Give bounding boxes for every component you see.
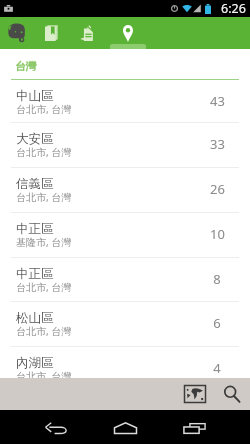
button[interactable]: 松山區 xyxy=(0,302,250,346)
staticText: 台北市, 台灣 xyxy=(16,102,72,116)
button[interactable]: Evernote home xyxy=(0,17,33,49)
staticText: 6 xyxy=(213,314,221,332)
staticText: 台灣 xyxy=(15,60,36,73)
staticText: 中正區 xyxy=(16,266,54,282)
button[interactable]: 大安區 xyxy=(0,123,250,167)
staticText: 松山區 xyxy=(16,310,54,326)
staticText: 基隆市, 台灣 xyxy=(16,235,72,249)
staticText: 大安區 xyxy=(16,131,54,147)
button[interactable]: 中正區 xyxy=(0,213,250,257)
staticText: 中正區 xyxy=(16,221,54,237)
staticText: 台北市, 台灣 xyxy=(16,190,72,204)
button[interactable]: Places tab xyxy=(105,17,150,49)
button[interactable]: Search xyxy=(214,378,250,410)
button[interactable]: 內湖區 xyxy=(0,347,250,378)
button[interactable]: 中山區 xyxy=(0,80,250,122)
button[interactable]: Back xyxy=(22,410,91,444)
button[interactable]: Home xyxy=(91,410,160,444)
button[interactable]: Tags tab xyxy=(69,17,105,49)
staticText: 10 xyxy=(210,225,225,243)
staticText: 26 xyxy=(210,180,225,198)
staticText: 43 xyxy=(210,92,225,110)
button[interactable]: Recent apps xyxy=(160,410,229,444)
staticText: 信義區 xyxy=(16,176,54,192)
button[interactable]: 信義區 xyxy=(0,168,250,212)
staticText: 台北市, 台灣 xyxy=(16,369,72,378)
staticText: 6:26 xyxy=(221,0,246,17)
staticText: 4 xyxy=(213,359,221,377)
staticText: 內湖區 xyxy=(16,355,54,371)
button[interactable]: 中正區 xyxy=(0,258,250,301)
staticText: 台北市, 台灣 xyxy=(16,324,72,338)
staticText: 33 xyxy=(210,135,225,153)
staticText: 台北市, 台灣 xyxy=(16,280,72,294)
staticText: 台北市, 台灣 xyxy=(16,145,72,159)
staticText: 8 xyxy=(213,270,221,288)
button[interactable]: Notebooks tab xyxy=(33,17,69,49)
button[interactable]: Map view xyxy=(175,378,214,410)
staticText: 中山區 xyxy=(16,88,54,104)
